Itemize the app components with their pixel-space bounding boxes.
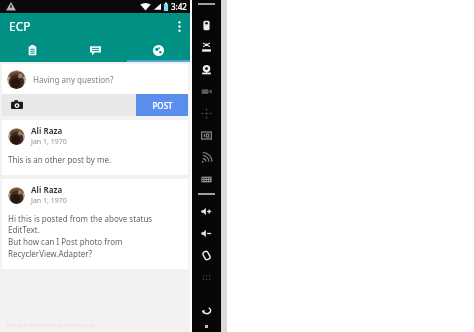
button[interactable]: Volume down (192, 222, 221, 244)
staticText: POST (152, 100, 173, 111)
button[interactable]: Camera (192, 58, 221, 80)
button[interactable]: Explore (127, 39, 190, 62)
button[interactable]: Ali Raza (2, 179, 188, 269)
button[interactable]: Ali Raza (2, 120, 188, 175)
button[interactable]: GPS (192, 36, 221, 58)
button[interactable]: Cellular (192, 146, 221, 168)
staticText: This is an other post by me. (8, 154, 112, 165)
button[interactable]: Keyboard (192, 168, 221, 190)
button[interactable]: Video (192, 80, 221, 102)
staticText: Having any question? (33, 74, 114, 85)
button[interactable]: More options (168, 13, 190, 39)
button[interactable]: Back (192, 299, 221, 321)
staticText: Jan 1, 1970 (31, 196, 67, 206)
button[interactable]: Add photo (2, 94, 32, 116)
staticText: 3:42 (171, 1, 187, 12)
button[interactable]: Identity (192, 124, 221, 146)
button[interactable]: Menu (192, 266, 221, 288)
staticText: Ali Raza (31, 184, 63, 195)
button[interactable]: Posts (0, 39, 64, 62)
button[interactable]: D-pad (192, 102, 221, 124)
staticText: ECP (9, 18, 31, 34)
staticText: Jan 1, 1970 (31, 137, 67, 147)
button[interactable]: POST (136, 94, 188, 116)
staticText: Ali Raza (31, 125, 63, 136)
button[interactable]: Power (192, 14, 221, 36)
staticText: h t t p s :// s t a c k o v e r f l o w (6, 321, 94, 329)
button[interactable]: Messages (64, 39, 127, 62)
staticText: Hi this is posted from the above status … (8, 213, 182, 235)
button[interactable]: Rotate (192, 244, 221, 266)
button[interactable]: Volume up (192, 200, 221, 222)
staticText: RecyclerView.Adapter? (8, 248, 93, 259)
button[interactable]: Having any question? (2, 64, 188, 116)
staticText: But how can I Post photo from (8, 236, 123, 247)
